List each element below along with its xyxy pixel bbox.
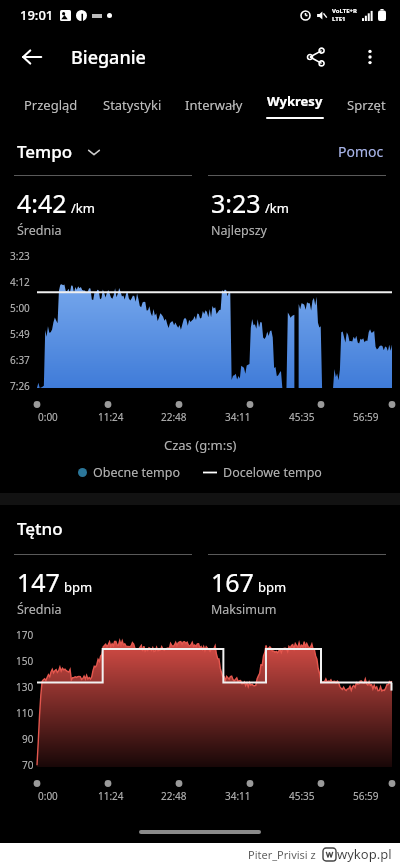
button[interactable]: Sprzęt (335, 84, 398, 126)
staticText: 22:48 (161, 410, 187, 424)
staticText: 34:11 (225, 410, 251, 424)
staticText: 90 (22, 732, 34, 746)
staticText: 150 (16, 654, 34, 668)
button[interactable]: Tempo (14, 136, 104, 167)
staticText: 45:35 (289, 789, 315, 803)
staticText: Maksimum (211, 601, 277, 618)
staticText: Bieganie (71, 45, 146, 70)
staticText: 11:24 (98, 410, 124, 424)
staticText: Pomoc (338, 142, 384, 161)
button[interactable]: 147 (14, 554, 192, 618)
staticText: 56:59 (353, 410, 379, 424)
staticText: 170 (16, 628, 34, 642)
staticText: 0:00 (38, 410, 58, 424)
staticText: bpm (64, 578, 93, 596)
button[interactable]: 167 (208, 554, 386, 618)
staticText: 70 (22, 758, 34, 772)
staticText: 3:23 (211, 186, 261, 220)
staticText: Interwały (185, 96, 243, 114)
staticText: LTE1 (332, 15, 346, 23)
staticText: Sprzęt (347, 96, 386, 114)
staticText: 56:59 (353, 789, 379, 803)
staticText: /km (71, 199, 95, 217)
button[interactable]: Więcej opcji (348, 35, 392, 79)
staticText: 0:00 (38, 789, 58, 803)
staticText: Czas (g:m:s) (164, 436, 237, 454)
staticText: 22:48 (161, 789, 187, 803)
staticText: Najlepszy (211, 222, 267, 239)
staticText: Obecne tempo (93, 464, 181, 481)
staticText: 5:00 (10, 301, 30, 315)
button[interactable]: 4:42 (14, 175, 192, 239)
staticText: 147 (17, 565, 60, 599)
button[interactable]: Statystyki (92, 84, 173, 126)
staticText: 3:23 (10, 249, 30, 263)
staticText: 19:01 (20, 6, 54, 24)
staticText: Średnia (17, 222, 62, 239)
staticText: 4:42 (17, 186, 67, 220)
staticText: Średnia (17, 601, 62, 618)
staticText: 7:26 (10, 379, 30, 393)
button[interactable]: Przegląd (10, 84, 92, 126)
button[interactable]: Udostępnij (294, 35, 338, 79)
staticText: 11:24 (98, 789, 124, 803)
staticText: VoLTE+R (332, 7, 357, 15)
staticText: 6:37 (10, 353, 30, 367)
button[interactable]: 3:23 (208, 175, 386, 239)
staticText: 45:35 (289, 410, 315, 424)
staticText: Tętno (17, 517, 63, 540)
staticText: 5:49 (10, 327, 30, 341)
staticText: Piter_Privisi z (248, 847, 316, 862)
button[interactable]: Interwały (173, 84, 254, 126)
staticText: Wykresy (267, 92, 323, 110)
staticText: /km (265, 199, 289, 217)
staticText: 4:12 (10, 275, 30, 289)
button[interactable]: Pomoc (332, 138, 390, 165)
button[interactable]: Wstecz (10, 35, 54, 79)
staticText: Przegląd (24, 96, 78, 114)
staticText: bpm (258, 578, 287, 596)
button[interactable]: Wykresy (254, 84, 335, 126)
staticText: wykop.pl (337, 845, 392, 863)
staticText: 130 (16, 680, 34, 694)
staticText: Statystyki (103, 96, 162, 114)
staticText: Tempo (17, 140, 73, 163)
staticText: Docelowe tempo (223, 464, 322, 481)
staticText: 167 (211, 565, 254, 599)
staticText: 110 (16, 706, 34, 720)
staticText: 34:11 (225, 789, 251, 803)
